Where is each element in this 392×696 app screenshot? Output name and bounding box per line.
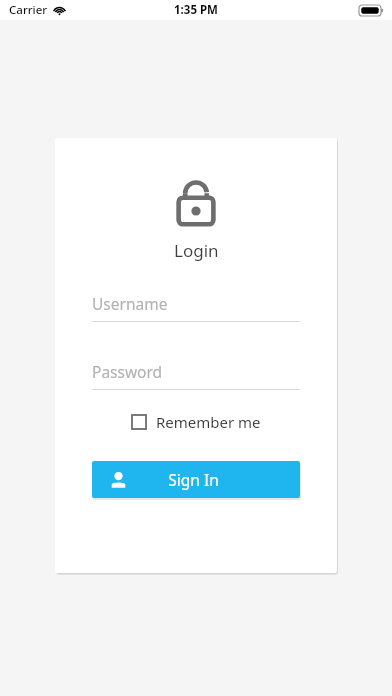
staticText: Username <box>92 293 168 314</box>
staticText: Remember me <box>156 412 261 432</box>
button[interactable]: Sign In <box>92 461 300 498</box>
button[interactable]: Password <box>92 361 300 390</box>
button[interactable]: Username <box>92 293 300 322</box>
staticText: 1:35 PM <box>174 2 218 18</box>
staticText: Password <box>92 361 163 382</box>
staticText: Sign In <box>127 469 260 490</box>
button[interactable]: Remember me <box>92 412 300 432</box>
staticText: Carrier <box>9 2 48 18</box>
staticText: Login <box>174 239 219 262</box>
